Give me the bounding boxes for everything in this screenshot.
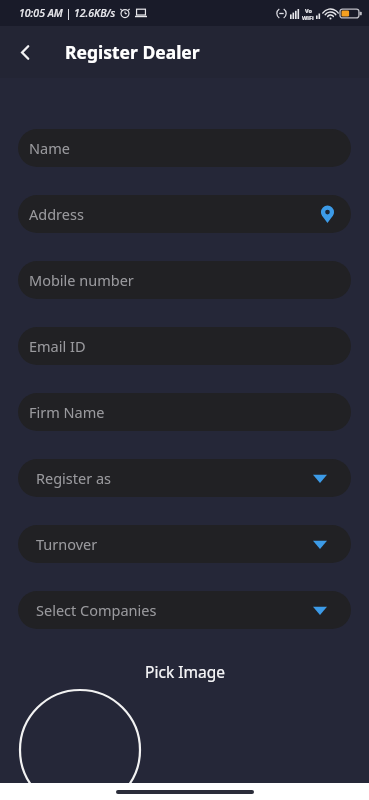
button[interactable]: Name <box>18 129 351 167</box>
other: Selected image preview <box>0 0 369 800</box>
staticText: Turnover <box>36 534 98 554</box>
staticText: Name <box>29 138 70 158</box>
staticText: Pick Image <box>145 661 225 682</box>
staticText: Vo <box>305 7 312 14</box>
staticText: 10:05 AM | 12.6KB/s <box>19 6 116 20</box>
staticText: Register as <box>36 468 112 488</box>
button[interactable]: Register as <box>18 459 351 497</box>
button[interactable]: Pick Image <box>0 660 369 682</box>
button[interactable]: Address <box>18 195 351 233</box>
button[interactable]: Pick location <box>317 204 337 224</box>
button[interactable]: Turnover <box>18 525 351 563</box>
staticText: Register Dealer <box>65 40 200 64</box>
staticText: Firm Name <box>29 402 105 422</box>
staticText: Select Companies <box>36 600 157 620</box>
button[interactable]: Email ID <box>18 327 351 365</box>
button[interactable]: Firm Name <box>18 393 351 431</box>
button[interactable]: Back <box>8 35 42 69</box>
button[interactable]: Select Companies <box>18 591 351 629</box>
staticText: Mobile number <box>29 270 134 290</box>
button[interactable]: Mobile number <box>18 261 351 299</box>
staticText: WiFi <box>302 14 314 20</box>
staticText: Email ID <box>29 336 86 356</box>
staticText: Address <box>29 204 84 224</box>
